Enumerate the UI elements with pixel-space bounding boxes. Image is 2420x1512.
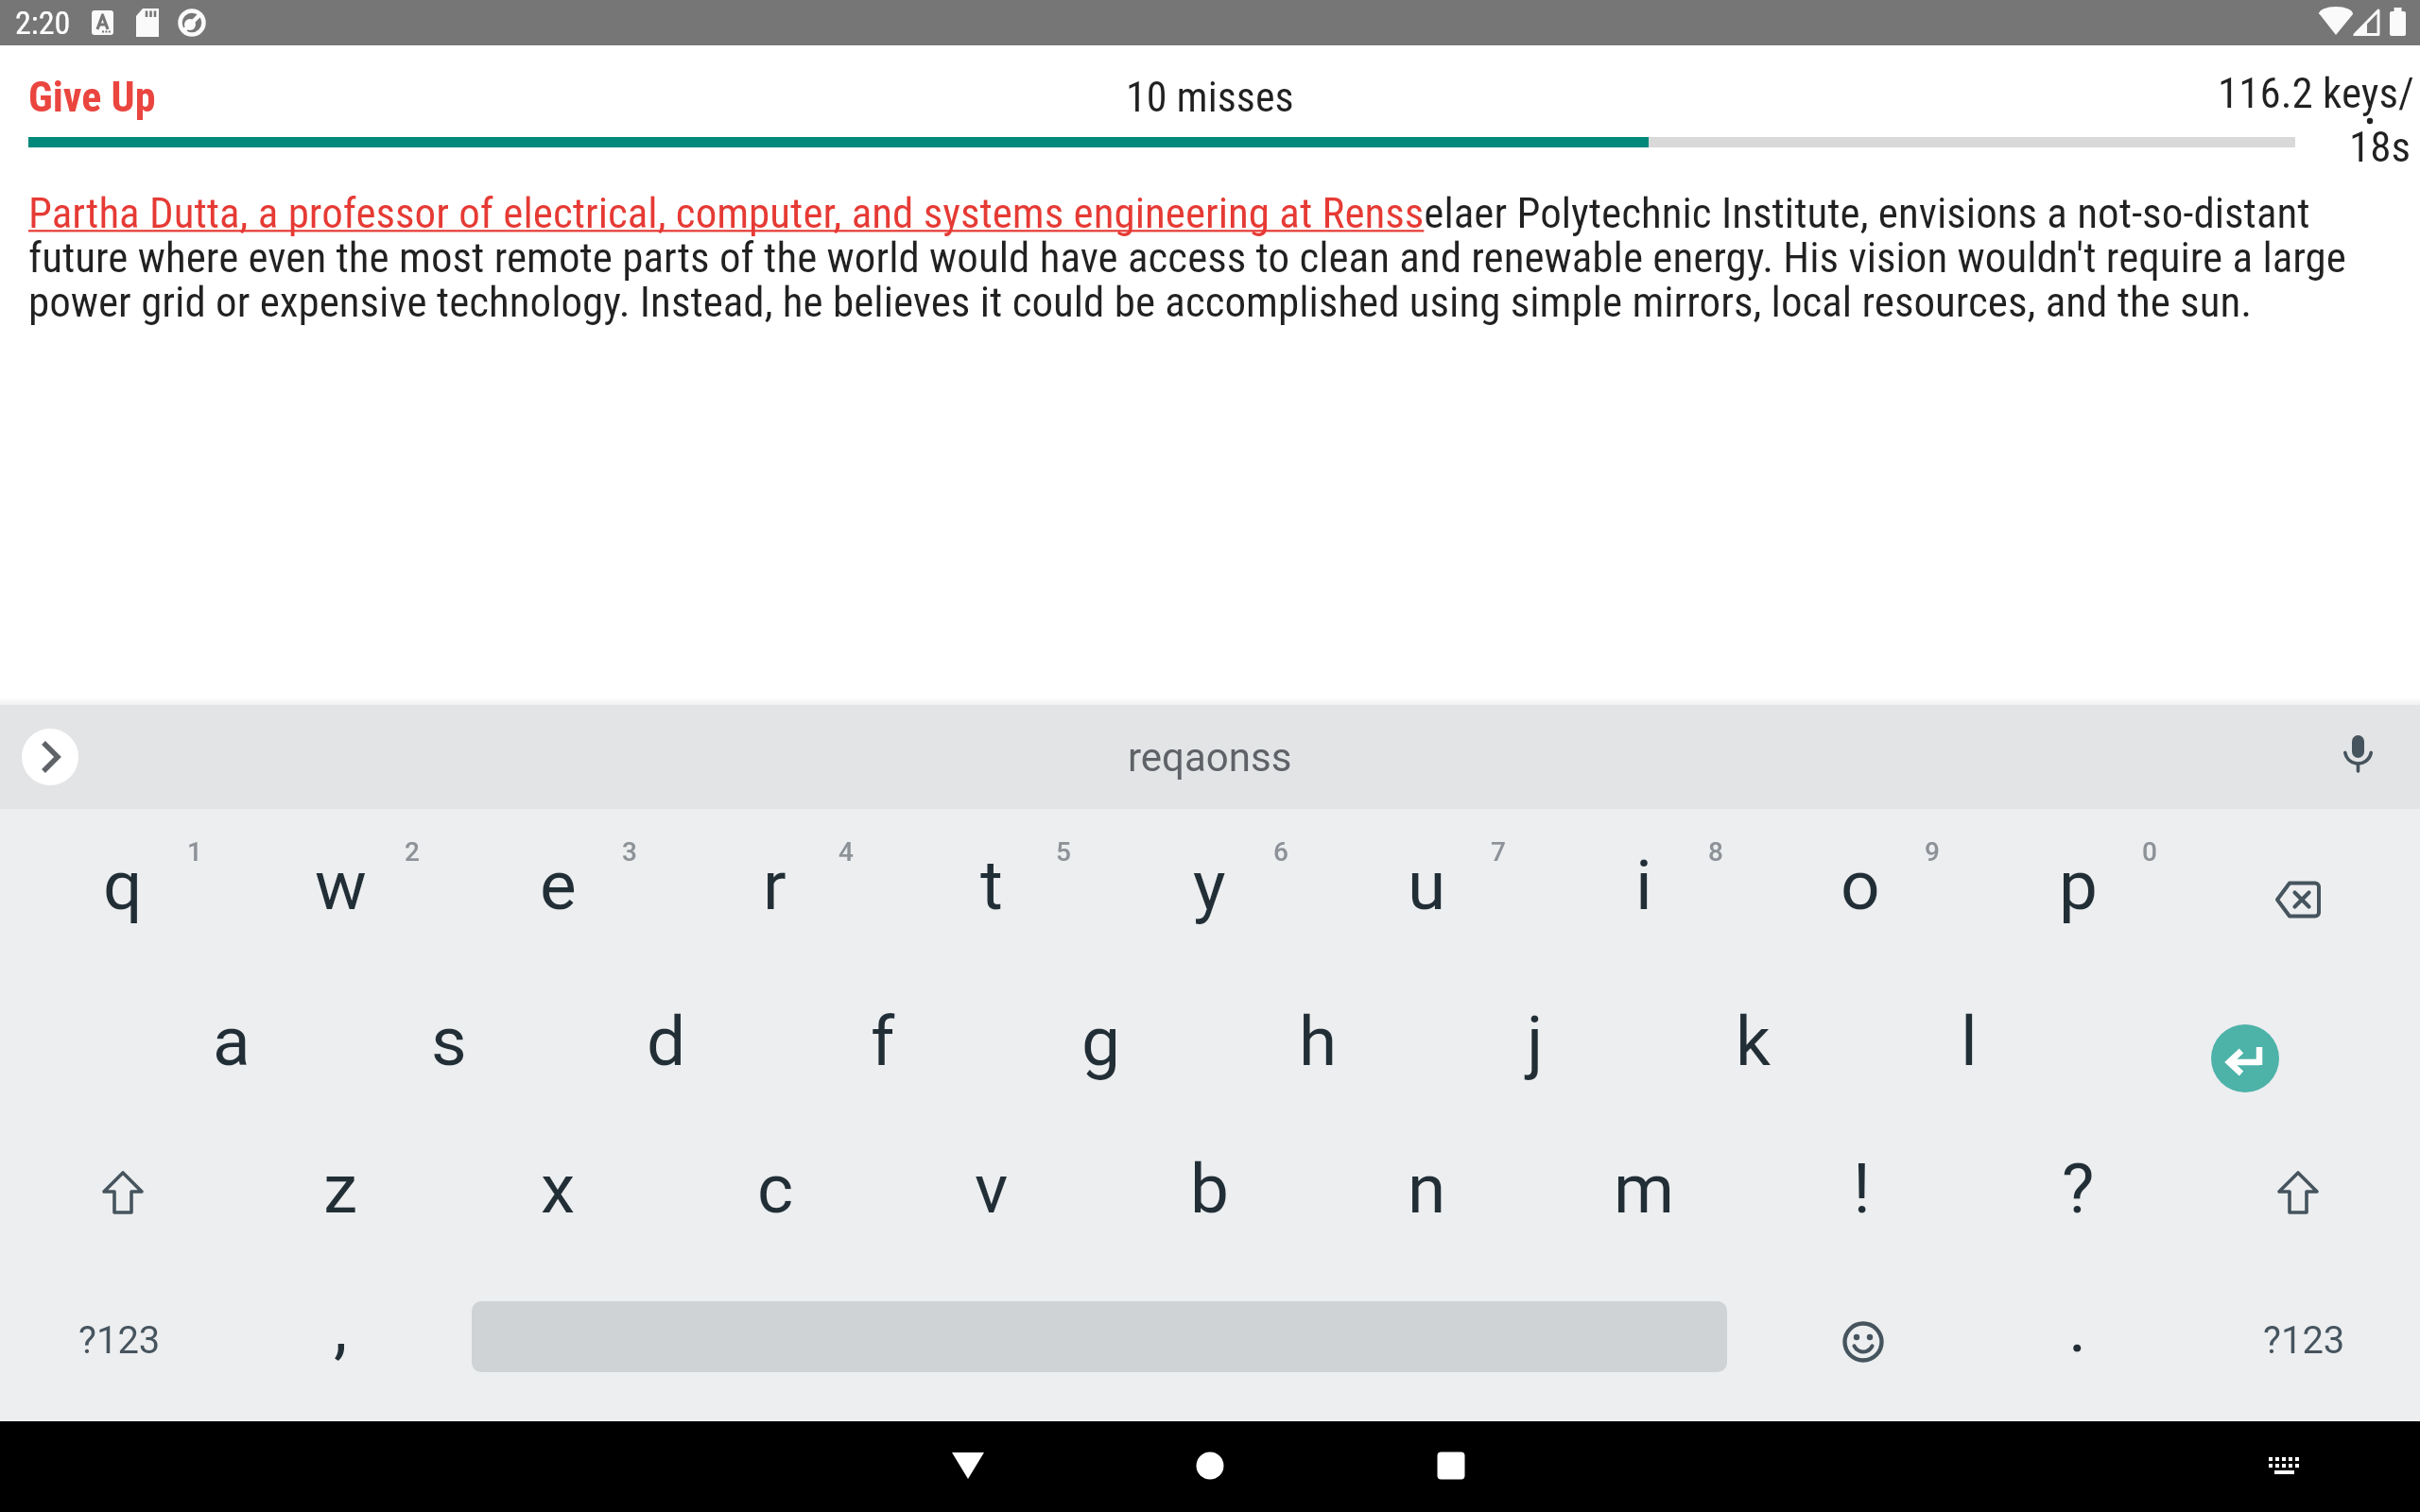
staticText: , bbox=[334, 1287, 348, 1368]
button[interactable]: , bbox=[233, 1253, 447, 1402]
button[interactable] bbox=[2191, 825, 2405, 974]
button[interactable]: Give Up bbox=[28, 73, 425, 131]
staticText: m bbox=[1614, 1148, 1675, 1229]
staticText: 18s bbox=[2349, 122, 2411, 172]
button[interactable]: x bbox=[451, 1114, 665, 1263]
staticText: n bbox=[1408, 1148, 1446, 1229]
staticText: ?123 bbox=[78, 1318, 161, 1363]
staticText: x bbox=[541, 1148, 576, 1229]
button[interactable] bbox=[2169, 984, 2321, 1133]
staticText: 1 bbox=[187, 836, 202, 868]
staticText: reqaonss bbox=[1128, 734, 1292, 781]
button[interactable] bbox=[22, 729, 78, 785]
button[interactable] bbox=[2223, 1427, 2344, 1506]
staticText: 4 bbox=[838, 836, 854, 868]
button[interactable]: ?123 bbox=[12, 1265, 226, 1415]
button[interactable]: m bbox=[1537, 1114, 1751, 1263]
staticText: h bbox=[1299, 1001, 1338, 1082]
button[interactable]: q bbox=[16, 811, 230, 960]
button[interactable]: v bbox=[885, 1114, 1098, 1263]
staticText: a bbox=[213, 1001, 251, 1082]
staticText: 5 bbox=[1056, 836, 1071, 868]
button[interactable]: r bbox=[667, 811, 881, 960]
button[interactable] bbox=[2329, 728, 2386, 786]
staticText: z bbox=[323, 1148, 358, 1229]
button[interactable]: k bbox=[1646, 967, 1859, 1116]
button[interactable]: j bbox=[1428, 967, 1642, 1116]
staticText: Partha Dutta, a professor of electrical,… bbox=[28, 188, 2310, 238]
staticText: l bbox=[1961, 1001, 1978, 1082]
button[interactable] bbox=[1149, 1427, 1270, 1506]
button[interactable]: y bbox=[1102, 811, 1316, 960]
staticText: i bbox=[1635, 845, 1652, 926]
button[interactable]: z bbox=[233, 1114, 447, 1263]
button[interactable] bbox=[16, 1118, 230, 1267]
staticText: 9 bbox=[1925, 836, 1940, 868]
button[interactable]: t bbox=[885, 811, 1098, 960]
staticText: 6 bbox=[1273, 836, 1288, 868]
staticText: q bbox=[103, 845, 143, 926]
staticText: v bbox=[975, 1148, 1009, 1229]
button[interactable]: w bbox=[233, 811, 447, 960]
button[interactable]: c bbox=[668, 1114, 882, 1263]
staticText: 10 misses bbox=[1126, 73, 1294, 122]
button[interactable]: . bbox=[1971, 1253, 2185, 1402]
button[interactable]: p bbox=[1971, 811, 2185, 960]
staticText: t bbox=[980, 845, 1003, 926]
staticText: 3 bbox=[622, 836, 637, 868]
staticText: s bbox=[431, 1001, 467, 1082]
staticText: 0 bbox=[2142, 836, 2157, 868]
button[interactable]: a bbox=[125, 967, 338, 1116]
button[interactable]: s bbox=[342, 967, 556, 1116]
button[interactable] bbox=[1756, 1267, 1970, 1417]
staticText: ?123 bbox=[2263, 1318, 2345, 1363]
button[interactable] bbox=[907, 1427, 1028, 1506]
staticText: 2:20 bbox=[15, 4, 71, 42]
button[interactable]: ? bbox=[1971, 1114, 2185, 1263]
staticText: w bbox=[315, 845, 367, 926]
button[interactable]: u bbox=[1320, 811, 1533, 960]
staticText: c bbox=[757, 1148, 794, 1229]
staticText: b bbox=[1190, 1148, 1229, 1229]
staticText: future where even the most remote parts … bbox=[28, 232, 2346, 283]
staticText: ? bbox=[2062, 1148, 2095, 1229]
button[interactable]: h bbox=[1211, 967, 1425, 1116]
button[interactable]: e bbox=[451, 811, 665, 960]
staticText: 8 bbox=[1708, 836, 1723, 868]
button[interactable]: o bbox=[1754, 811, 1967, 960]
button[interactable] bbox=[1391, 1427, 1512, 1506]
staticText: k bbox=[1736, 1001, 1771, 1082]
button[interactable]: d bbox=[560, 967, 773, 1116]
button[interactable]: g bbox=[994, 967, 1207, 1116]
button[interactable]: reqaonss bbox=[1021, 729, 1399, 785]
button[interactable]: b bbox=[1102, 1114, 1316, 1263]
staticText: o bbox=[1841, 845, 1880, 926]
staticText: r bbox=[763, 845, 786, 926]
button[interactable]: n bbox=[1320, 1114, 1533, 1263]
staticText: 7 bbox=[1491, 836, 1506, 868]
staticText: u bbox=[1408, 845, 1446, 926]
button[interactable] bbox=[472, 1301, 1727, 1372]
button[interactable]: ?123 bbox=[2197, 1265, 2411, 1415]
button[interactable] bbox=[2191, 1118, 2405, 1267]
staticText: . bbox=[2068, 1287, 2087, 1368]
staticText: f bbox=[871, 1001, 895, 1082]
staticText: ! bbox=[1853, 1148, 1871, 1229]
button[interactable]: i bbox=[1537, 811, 1751, 960]
staticText: y bbox=[1193, 845, 1226, 926]
button[interactable]: f bbox=[776, 967, 990, 1116]
staticText: 2 bbox=[405, 836, 420, 868]
button[interactable]: ! bbox=[1754, 1114, 1968, 1263]
staticText: j bbox=[1527, 1001, 1544, 1082]
staticText: Give Up bbox=[28, 73, 156, 122]
staticText: p bbox=[2059, 845, 2098, 926]
staticText: d bbox=[647, 1001, 686, 1082]
button[interactable]: l bbox=[1862, 967, 2076, 1116]
staticText: e bbox=[540, 845, 577, 926]
staticText: power grid or expensive technology. Inst… bbox=[28, 277, 2253, 327]
staticText: 116.2 keys/ bbox=[2218, 68, 2414, 118]
staticText: g bbox=[1081, 1001, 1120, 1082]
